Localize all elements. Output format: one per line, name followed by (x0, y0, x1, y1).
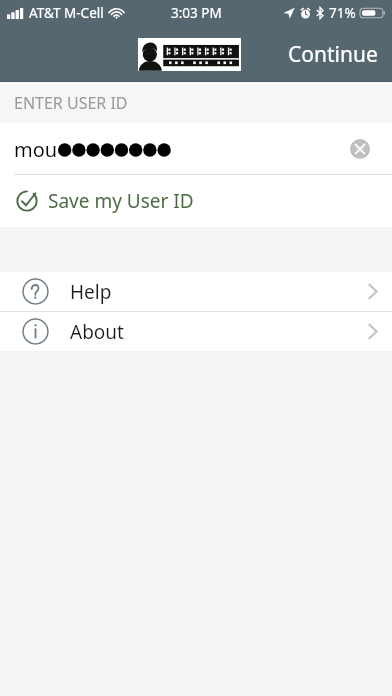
staticText: 71% (329, 4, 356, 22)
staticText: Save my User ID (48, 188, 194, 214)
staticText: Continue (288, 40, 378, 69)
staticText: About (70, 319, 124, 345)
button[interactable]: About (0, 312, 392, 351)
staticText: mou (14, 136, 58, 163)
button[interactable]: mou (0, 123, 392, 175)
button[interactable]: Clear user ID (349, 138, 371, 160)
button[interactable]: Continue (274, 30, 392, 79)
staticText: 3:03 PM (171, 4, 222, 22)
button[interactable]: Blackhawk Bank & Trust (138, 38, 241, 71)
staticText: ENTER USER ID (14, 92, 128, 114)
staticText: AT&T M-Cell (29, 4, 104, 22)
button[interactable]: Help (0, 272, 392, 311)
staticText: Help (70, 279, 112, 305)
button[interactable]: Save my User ID (0, 175, 392, 227)
